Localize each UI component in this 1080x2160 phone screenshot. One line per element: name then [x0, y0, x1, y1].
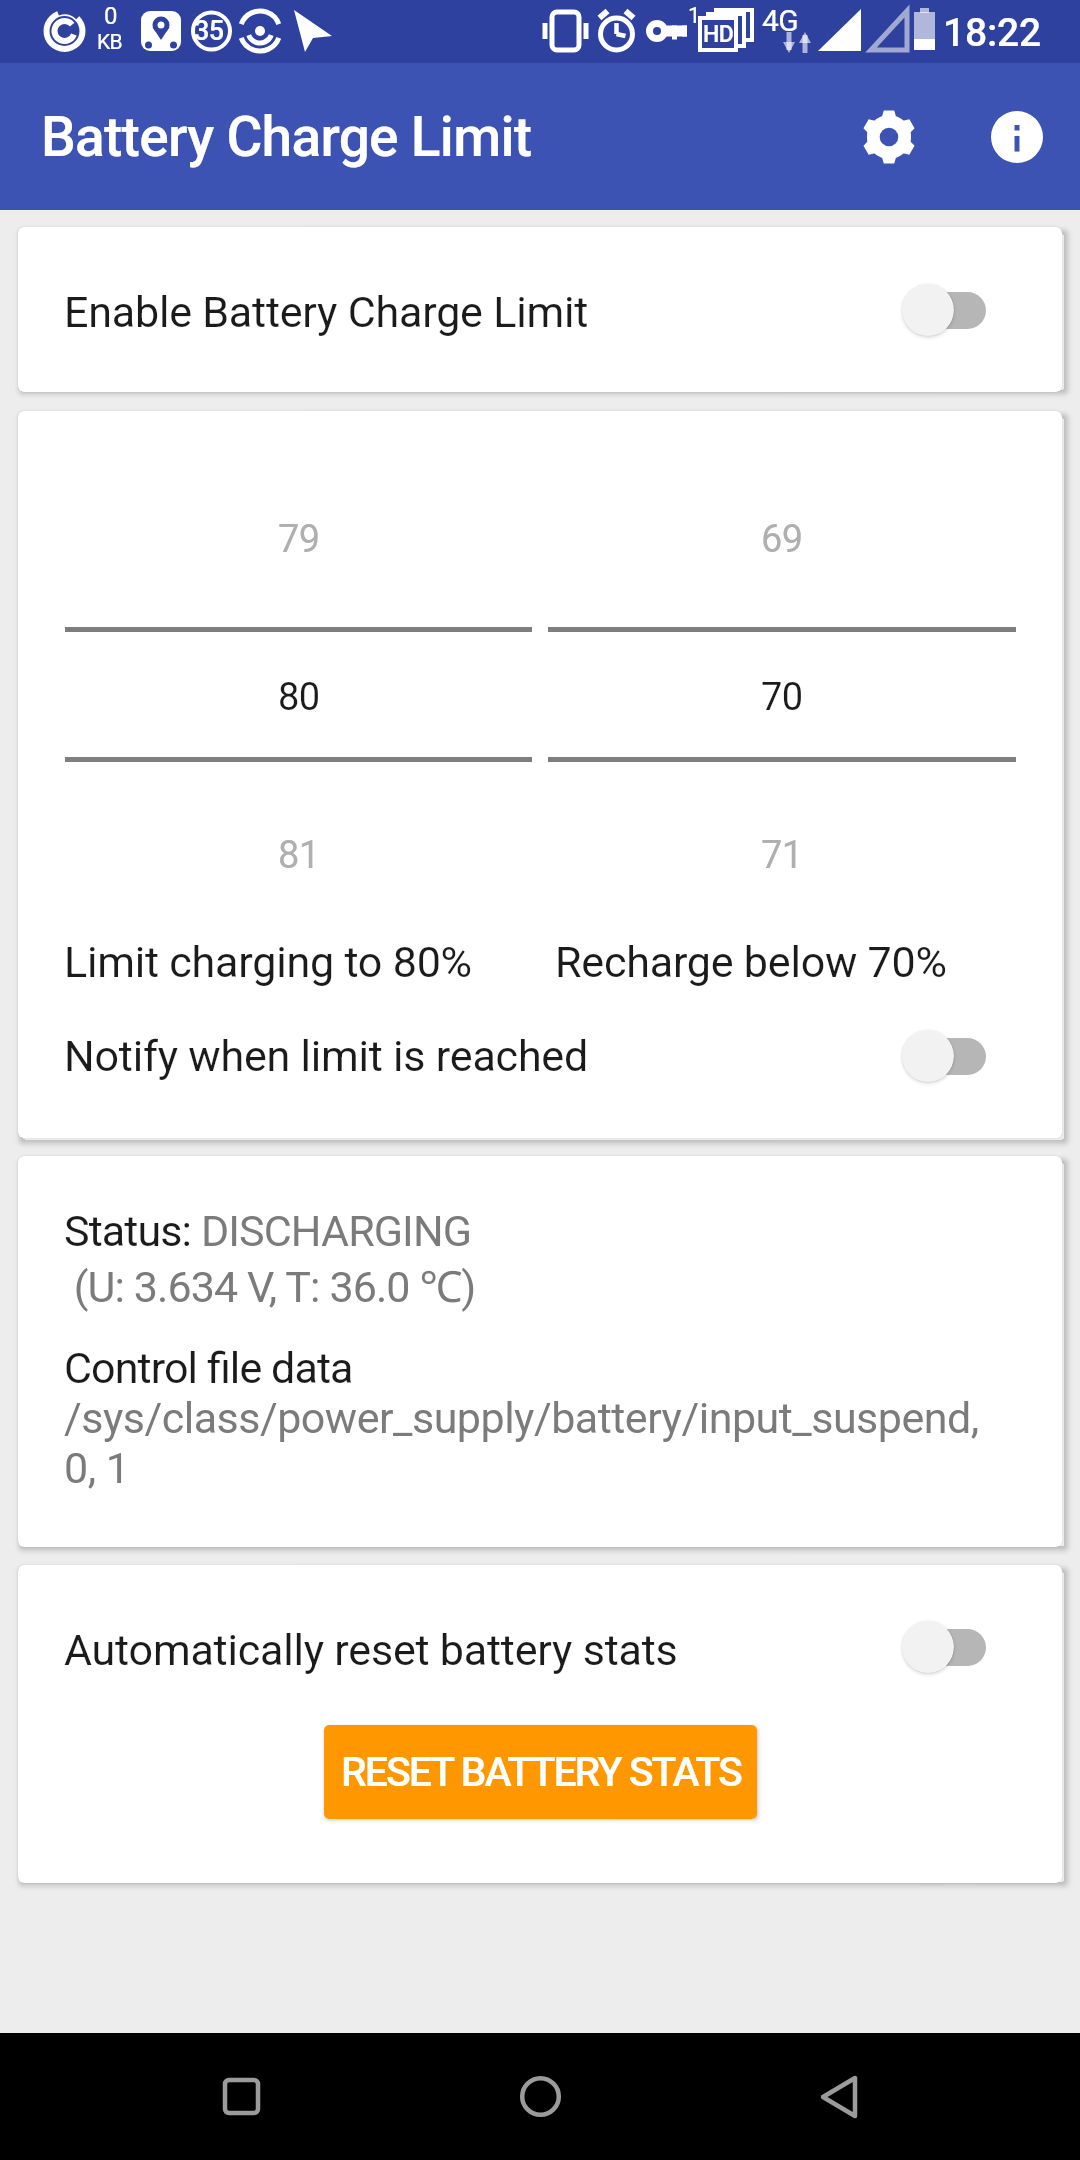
button[interactable]: Enable Battery Charge Limit	[18, 227, 1062, 392]
staticText: 35	[194, 15, 224, 47]
button[interactable]: 69	[548, 517, 1016, 878]
staticText: 81	[278, 833, 320, 878]
button[interactable]: Home	[460, 2033, 620, 2160]
button[interactable]: Recents	[161, 2033, 321, 2160]
button[interactable]: Settings	[841, 89, 937, 185]
staticText: Automatically reset battery stats	[64, 1625, 678, 1675]
button[interactable]: Back	[759, 2033, 919, 2160]
staticText: 80	[278, 675, 320, 720]
staticText: 4G	[762, 3, 799, 38]
button[interactable]: Automatically reset battery stats	[18, 1606, 1062, 1694]
staticText: DISCHARGING	[201, 1206, 472, 1256]
staticText: Status:	[64, 1206, 201, 1256]
staticText: 79	[278, 517, 320, 562]
staticText: Notify when limit is reached	[64, 1031, 589, 1081]
staticText: RESET BATTERY STATS	[341, 1748, 741, 1796]
staticText: 0	[104, 2, 117, 30]
staticText: Recharge below 70%	[555, 937, 1016, 987]
staticText: Limit charging to 80%	[64, 937, 540, 987]
staticText: 1	[688, 3, 700, 29]
staticText: 71	[761, 833, 803, 878]
staticText: 18:22	[943, 10, 1041, 56]
staticText: 69	[761, 517, 803, 562]
staticText: 70	[761, 675, 803, 720]
button[interactable]: 79	[65, 517, 532, 878]
staticText: Enable Battery Charge Limit	[64, 287, 589, 337]
staticText: KB	[97, 30, 123, 55]
button[interactable]: Notify when limit is reached	[18, 1012, 1062, 1100]
staticText: Battery Charge Limit	[41, 105, 532, 169]
staticText: HD	[703, 21, 734, 48]
staticText: /sys/class/power_supply/battery/input_su…	[64, 1393, 986, 1493]
staticText: Control file data	[64, 1343, 353, 1393]
button[interactable]: Info	[969, 89, 1065, 185]
staticText: (U: 3.634 V, T: 36.0 ℃)	[64, 1256, 476, 1315]
button[interactable]: RESET BATTERY STATS	[324, 1725, 757, 1819]
